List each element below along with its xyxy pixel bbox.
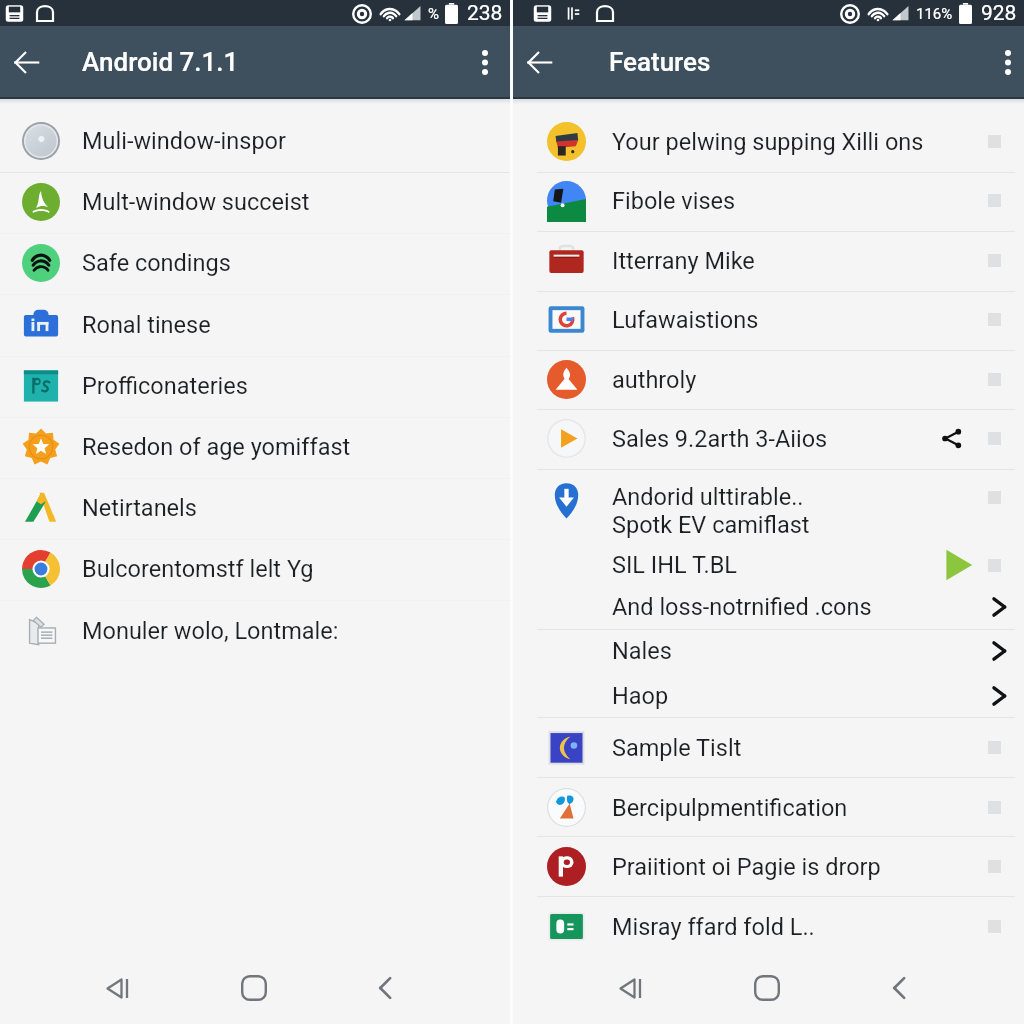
staticText: SIL IHL T.BL bbox=[612, 551, 738, 579]
button[interactable]: Misray ffard fold L.. bbox=[513, 897, 1024, 956]
staticText: Itterrany Mike bbox=[612, 247, 755, 275]
staticText: Your pelwing supping Xilli ons bbox=[612, 128, 924, 156]
button[interactable]: And loss-notrnified .cons bbox=[513, 586, 1024, 628]
button[interactable]: Back bbox=[877, 965, 923, 1011]
button[interactable]: SIL IHL T.BL bbox=[513, 544, 1024, 586]
staticText: Misray ffard fold L.. bbox=[612, 913, 815, 941]
button[interactable]: Monuler wolo, Lontmale: bbox=[0, 600, 510, 661]
button[interactable]: Resedon of age yomiffast bbox=[0, 416, 510, 477]
staticText: Haop bbox=[612, 682, 669, 710]
staticText: Praiitiont oi Pagie is drorp bbox=[612, 853, 881, 881]
button[interactable]: Netirtanels bbox=[0, 477, 510, 538]
button[interactable]: Haop bbox=[513, 674, 1024, 718]
staticText: Sample Tislt bbox=[612, 734, 742, 762]
staticText: Bulcorentomstf lelt Yg bbox=[82, 555, 314, 583]
button[interactable]: More options bbox=[986, 40, 1024, 84]
staticText: Resedon of age yomiffast bbox=[82, 433, 351, 461]
button[interactable]: Nales bbox=[513, 629, 1024, 673]
button[interactable]: Safe condings bbox=[0, 232, 510, 293]
button[interactable]: Lufawaistions bbox=[513, 290, 1024, 349]
button[interactable]: Recent apps bbox=[95, 965, 141, 1011]
staticText: 238 bbox=[467, 1, 503, 26]
button[interactable]: Your pelwing supping Xilli ons bbox=[513, 112, 1024, 171]
button[interactable]: Fibole vises bbox=[513, 171, 1024, 230]
button[interactable]: Navigate up bbox=[515, 38, 563, 86]
staticText: Ronal tinese bbox=[82, 311, 211, 339]
staticText: Monuler wolo, Lontmale: bbox=[82, 617, 339, 645]
button[interactable]: Recent apps bbox=[608, 965, 654, 1011]
staticText: Profficonateries bbox=[82, 372, 248, 400]
button[interactable]: Andorid ulttirable.. bbox=[513, 472, 1024, 544]
button[interactable]: authroly bbox=[513, 350, 1024, 409]
button[interactable]: Profficonateries bbox=[0, 355, 510, 416]
staticText: Spotk EV camiflast bbox=[612, 511, 810, 539]
staticText: Lufawaistions bbox=[612, 306, 759, 334]
staticText: Netirtanels bbox=[82, 494, 197, 522]
staticText: Mult-window succeist bbox=[82, 188, 310, 216]
button[interactable]: Bercipulpmentification bbox=[513, 778, 1024, 837]
staticText: Sales 9.2arth 3-Aiios bbox=[612, 425, 828, 453]
staticText: 928 bbox=[981, 1, 1017, 26]
button[interactable]: Home bbox=[231, 965, 277, 1011]
button[interactable]: Ronal tinese bbox=[0, 294, 510, 355]
staticText: Andorid ulttirable.. bbox=[612, 483, 804, 511]
staticText: authroly bbox=[612, 366, 697, 394]
button[interactable]: Muli-window-inspor bbox=[0, 110, 510, 171]
button[interactable]: Praiitiont oi Pagie is drorp bbox=[513, 837, 1024, 896]
button[interactable]: Sample Tislt bbox=[513, 718, 1024, 777]
button[interactable]: Bulcorentomstf lelt Yg bbox=[0, 538, 510, 599]
staticText: Safe condings bbox=[82, 249, 231, 277]
staticText: Nales bbox=[612, 637, 672, 665]
button[interactable]: Sales 9.2arth 3-Aiios bbox=[513, 409, 1024, 468]
staticText: And loss-notrnified .cons bbox=[612, 593, 872, 621]
staticText: 116% bbox=[916, 5, 953, 23]
staticText: Features bbox=[609, 47, 711, 77]
button[interactable]: Itterrany Mike bbox=[513, 231, 1024, 290]
button[interactable]: More options bbox=[463, 40, 507, 84]
staticText: % bbox=[428, 5, 439, 23]
staticText: Fibole vises bbox=[612, 187, 736, 215]
staticText: Muli-window-inspor bbox=[82, 127, 286, 155]
button[interactable]: Mult-window succeist bbox=[0, 171, 510, 232]
staticText: Android 7.1.1 bbox=[82, 47, 239, 77]
button[interactable]: Home bbox=[744, 965, 790, 1011]
button[interactable]: Navigate up bbox=[2, 38, 50, 86]
button[interactable]: Back bbox=[363, 965, 409, 1011]
staticText: Bercipulpmentification bbox=[612, 794, 848, 822]
